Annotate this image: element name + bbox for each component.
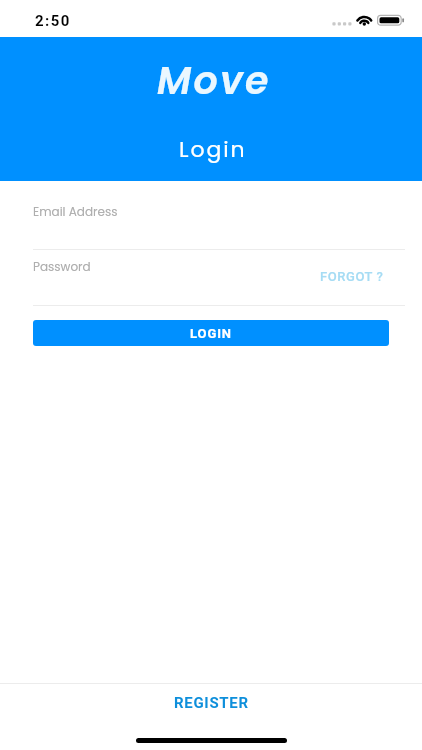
staticText: REGISTER [174,694,249,712]
staticText: LOGIN [190,326,232,341]
button[interactable]: LOGIN [33,320,389,346]
staticText: Move [157,54,271,107]
staticText: Email Address [33,203,118,220]
staticText: Password [33,258,91,275]
button[interactable]: REGISTER [0,684,422,722]
staticText: Login [179,134,247,165]
staticText: FORGOT ? [320,269,384,284]
staticText: 2:50 [35,12,71,30]
button[interactable]: FORGOT ? [317,267,387,286]
